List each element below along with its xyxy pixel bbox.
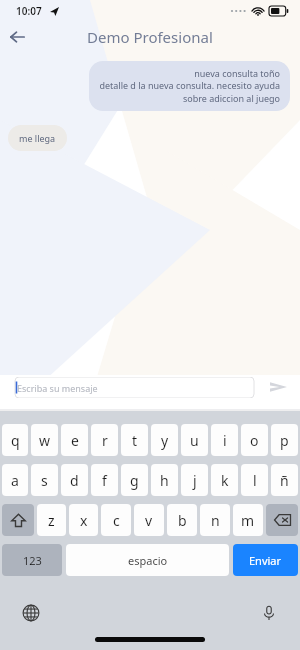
staticText: z — [48, 511, 55, 530]
button[interactable]: Escriba su mensaje — [10, 377, 259, 398]
button[interactable]: c — [101, 504, 131, 536]
button[interactable]: n — [200, 504, 230, 536]
button[interactable]: k — [211, 464, 238, 496]
button[interactable]: 123 — [2, 544, 62, 576]
staticText: me llega — [19, 132, 56, 144]
staticText: nueva consulta toño detalle d la nueva c… — [99, 67, 280, 105]
button[interactable]: j — [181, 464, 208, 496]
button[interactable]: w — [31, 424, 58, 456]
button[interactable]: g — [121, 464, 148, 496]
staticText: j — [193, 471, 197, 490]
staticText: m — [241, 511, 255, 530]
staticText: g — [130, 471, 139, 490]
staticText: y — [161, 431, 169, 450]
button[interactable]: u — [181, 424, 208, 456]
staticText: f — [102, 471, 107, 490]
staticText: Enviar — [249, 553, 282, 568]
staticText: h — [160, 471, 169, 490]
staticText: w — [39, 431, 51, 450]
staticText: n — [211, 511, 220, 530]
staticText: Demo Profesional — [87, 27, 213, 47]
button[interactable]: y — [151, 424, 178, 456]
staticText: o — [250, 431, 259, 450]
button[interactable]: l — [241, 464, 268, 496]
button[interactable]: t — [121, 424, 148, 456]
button[interactable]: Change keyboard — [18, 600, 44, 626]
staticText: t — [132, 431, 138, 450]
button[interactable]: p — [271, 424, 298, 456]
staticText: k — [221, 471, 229, 490]
button[interactable]: z — [37, 504, 66, 536]
button[interactable]: d — [61, 464, 88, 496]
button[interactable]: espacio — [66, 544, 229, 576]
staticText: d — [70, 471, 79, 490]
staticText: i — [223, 431, 227, 450]
button[interactable]: q — [2, 424, 28, 456]
staticText: 10:07 — [16, 4, 42, 18]
staticText: c — [113, 511, 120, 530]
button[interactable]: Shift — [2, 504, 34, 536]
staticText: a — [11, 471, 19, 490]
staticText: Escriba su mensaje — [17, 382, 98, 394]
staticText: espacio — [128, 553, 168, 568]
staticText: u — [190, 431, 199, 450]
button[interactable]: ñ — [271, 464, 298, 496]
button[interactable]: Enviar — [233, 544, 298, 576]
button[interactable]: Backspace — [266, 504, 298, 536]
button[interactable]: Dictate — [256, 600, 282, 626]
button[interactable]: Back — [0, 22, 34, 52]
button[interactable]: f — [91, 464, 118, 496]
button[interactable]: v — [134, 504, 164, 536]
button[interactable]: o — [241, 424, 268, 456]
button[interactable]: nueva consulta toño detalle d la nueva c… — [89, 61, 290, 111]
button[interactable]: r — [91, 424, 118, 456]
button[interactable]: x — [69, 504, 98, 536]
staticText: x — [80, 511, 88, 530]
button[interactable]: e — [61, 424, 88, 456]
button[interactable]: b — [167, 504, 197, 536]
staticText: b — [178, 511, 187, 530]
staticText: p — [280, 431, 289, 450]
button[interactable]: m — [233, 504, 263, 536]
staticText: e — [71, 431, 79, 450]
button[interactable]: Send — [266, 375, 290, 399]
button[interactable]: a — [2, 464, 28, 496]
staticText: s — [41, 471, 48, 490]
button[interactable]: s — [31, 464, 58, 496]
button[interactable]: me llega — [8, 125, 67, 151]
staticText: r — [102, 431, 108, 450]
button[interactable]: h — [151, 464, 178, 496]
staticText: q — [11, 431, 20, 450]
staticText: l — [253, 471, 257, 490]
staticText: ñ — [280, 471, 289, 490]
staticText: v — [145, 511, 153, 530]
button[interactable]: i — [211, 424, 238, 456]
staticText: 123 — [23, 553, 42, 568]
